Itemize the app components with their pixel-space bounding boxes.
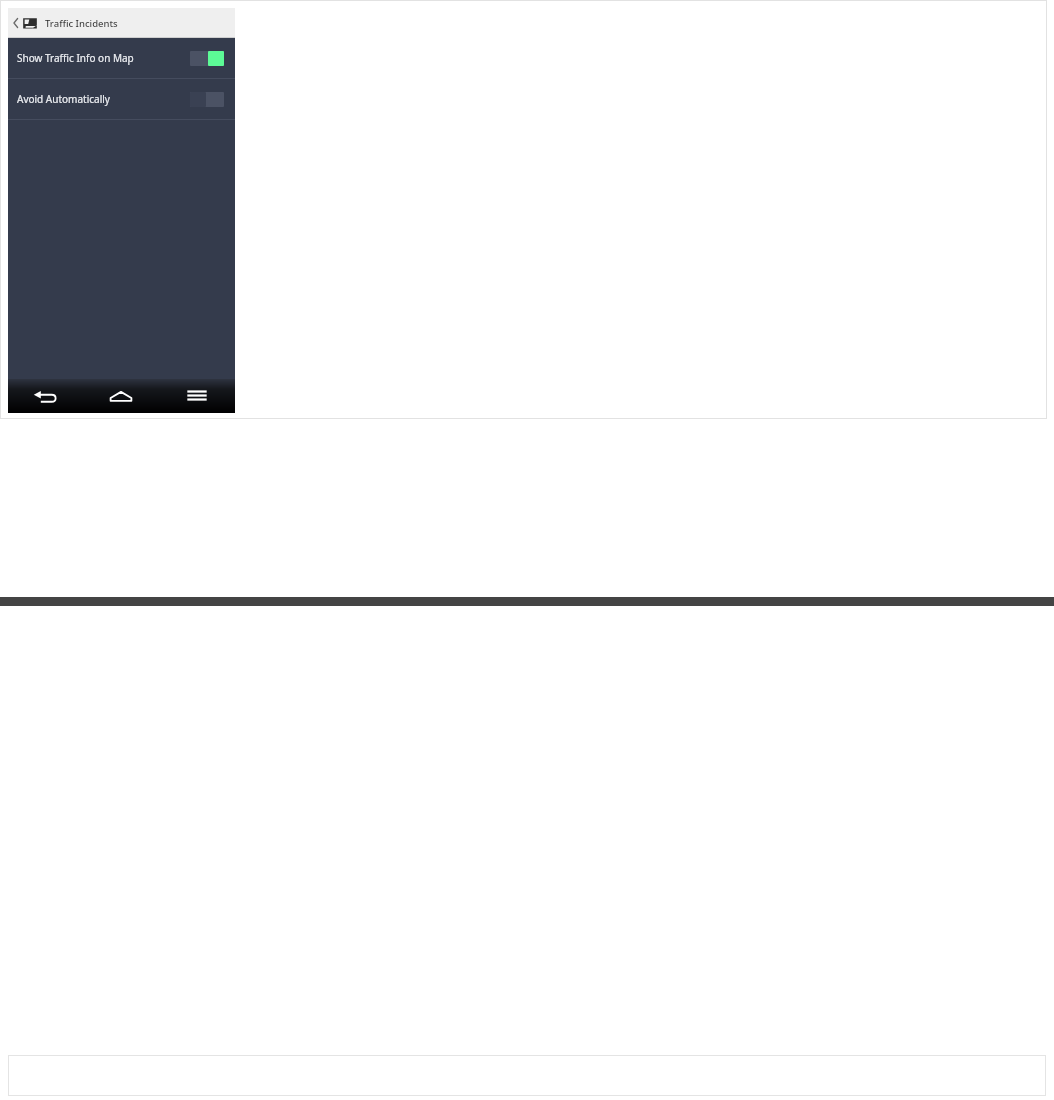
button[interactable]: Avoid Automatically: [8, 79, 235, 119]
staticText: Traffic Incidents: [45, 17, 118, 30]
staticText: Avoid Automatically: [17, 92, 190, 106]
button[interactable]: Recent apps: [159, 379, 235, 413]
button[interactable]: On: [190, 51, 224, 66]
button[interactable]: Home: [83, 379, 159, 413]
button[interactable]: Back to Traffic Incidents: [8, 8, 235, 38]
staticText: Show Traffic Info on Map: [17, 51, 190, 65]
button[interactable]: Show Traffic Info on Map: [8, 38, 235, 78]
button[interactable]: Off: [190, 92, 224, 107]
button[interactable]: Back: [8, 379, 83, 413]
